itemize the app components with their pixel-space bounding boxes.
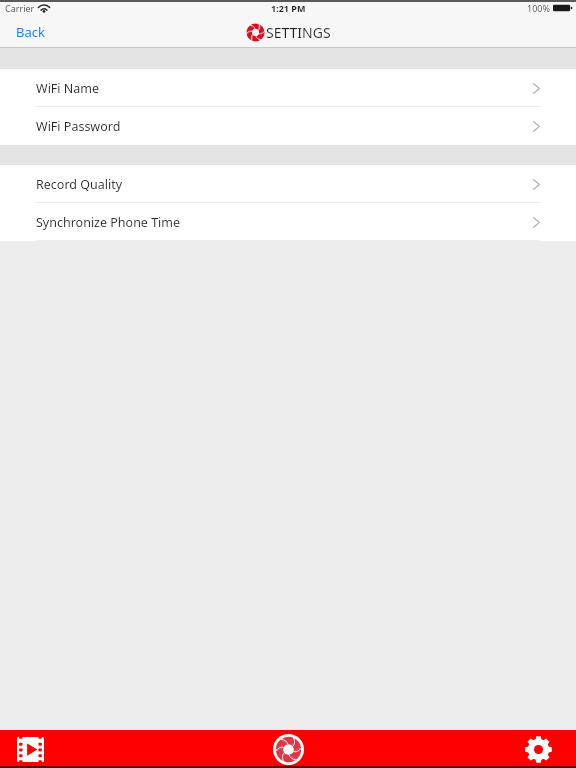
staticText: SETTINGS: [266, 23, 331, 42]
button[interactable]: Videos: [0, 730, 192, 768]
staticText: Back: [16, 23, 45, 41]
button[interactable]: WiFi Password: [0, 107, 576, 145]
button[interactable]: Settings: [384, 730, 576, 768]
staticText: WiFi Password: [36, 118, 121, 135]
button[interactable]: Camera: [192, 730, 384, 768]
button[interactable]: Synchronize Phone Time: [0, 203, 576, 241]
button[interactable]: WiFi Name: [0, 69, 576, 107]
staticText: WiFi Name: [36, 80, 100, 97]
button[interactable]: Back: [0, 20, 57, 48]
button[interactable]: Record Quality: [0, 165, 576, 203]
staticText: Synchronize Phone Time: [36, 214, 181, 231]
staticText: Record Quality: [36, 176, 123, 193]
staticText: Carrier: [5, 2, 35, 14]
staticText: 100%: [527, 2, 550, 14]
staticText: 1:21 PM: [271, 2, 306, 14]
